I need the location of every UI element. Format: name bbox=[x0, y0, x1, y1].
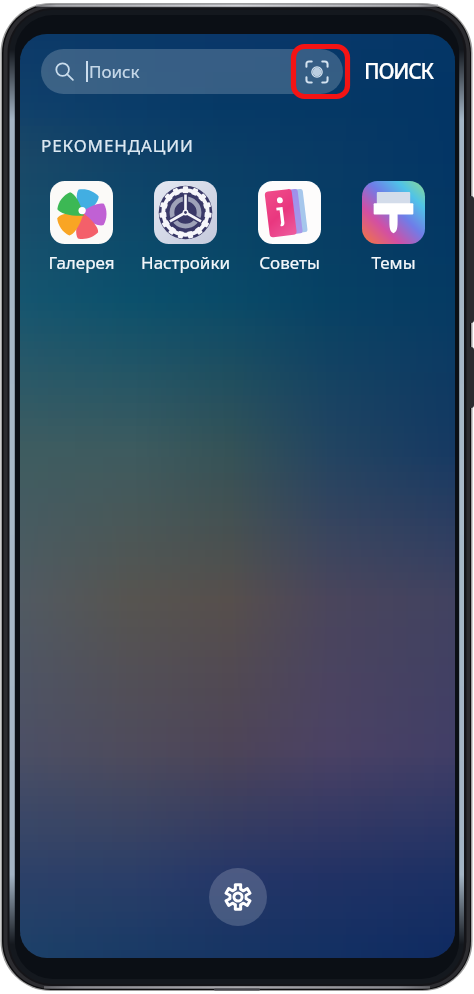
staticText: Поиск bbox=[89, 60, 140, 83]
button[interactable]: Scan bbox=[297, 52, 337, 92]
button[interactable]: Темы bbox=[341, 181, 445, 274]
staticText: Советы bbox=[259, 251, 320, 274]
staticText: РЕКОМЕНДАЦИИ bbox=[41, 134, 194, 157]
staticText: Темы bbox=[371, 251, 416, 274]
button[interactable]: ПОИСК bbox=[364, 57, 433, 86]
button[interactable]: Советы bbox=[237, 181, 341, 274]
button[interactable]: Настройки bbox=[133, 181, 237, 274]
staticText: Галерея bbox=[48, 251, 115, 274]
button[interactable]: Поиск bbox=[41, 49, 343, 94]
button[interactable]: Галерея bbox=[30, 181, 133, 274]
button[interactable]: Settings bbox=[209, 868, 267, 926]
staticText: Настройки bbox=[141, 251, 230, 274]
